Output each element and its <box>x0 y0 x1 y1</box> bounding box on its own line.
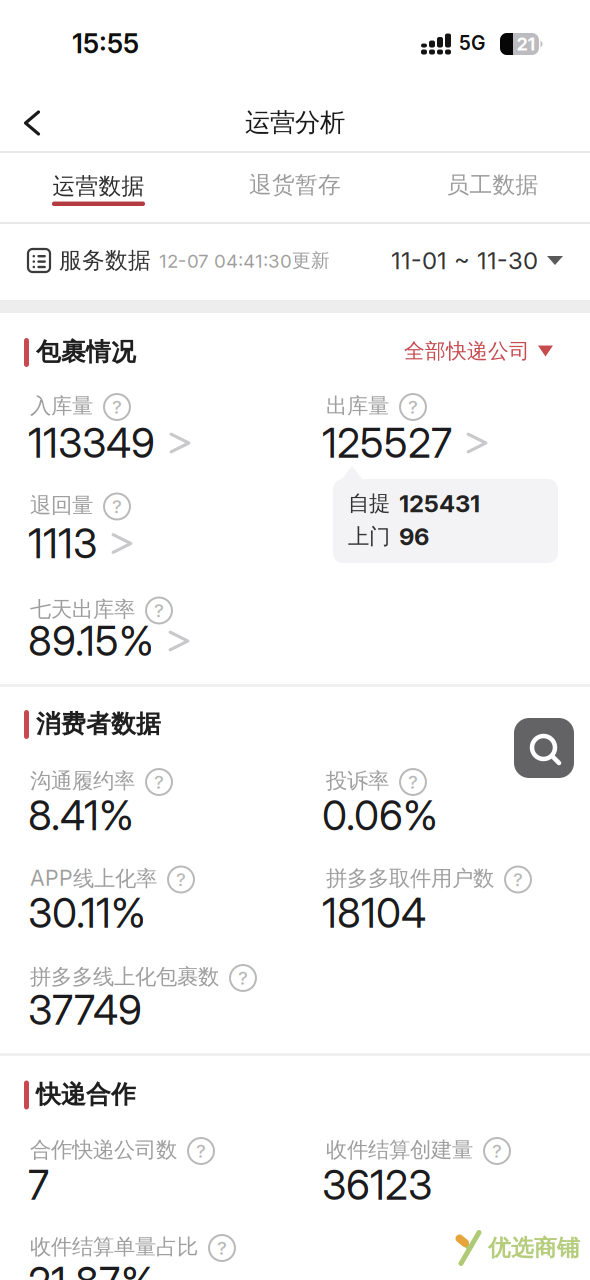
staticText: 5G <box>459 31 485 55</box>
staticText: 服务数据 <box>59 246 151 275</box>
staticText: 消费者数据 <box>36 708 161 740</box>
staticText: ? <box>408 771 418 793</box>
staticText: 出库量 <box>326 393 389 419</box>
staticText: 30.11% <box>28 888 146 938</box>
staticText: 15:55 <box>72 27 139 60</box>
staticText: 37749 <box>28 985 142 1035</box>
button[interactable]: 1113 <box>28 519 127 568</box>
staticText: ? <box>154 771 164 793</box>
staticText: ? <box>408 396 418 418</box>
staticText: 0.06% <box>322 791 438 840</box>
staticText: 合作快递公司数 <box>30 1137 177 1163</box>
staticText: 36123 <box>322 1160 432 1210</box>
staticText: 拼多多取件用户数 <box>326 865 494 892</box>
staticText: APP线上化率 <box>30 865 157 892</box>
staticText: 七天出库率 <box>30 596 135 623</box>
button[interactable]: 选择快递公司 <box>404 330 553 372</box>
staticText: 21 <box>516 33 535 55</box>
staticText: 上门 <box>348 523 390 550</box>
button[interactable]: 员工数据 <box>436 159 548 211</box>
staticText: ? <box>492 1140 502 1162</box>
staticText: 12-07 04:41:30更新 <box>159 249 330 272</box>
staticText: 收件结算单量占比 <box>30 1234 198 1260</box>
button[interactable]: 搜索 <box>514 718 574 778</box>
staticText: ? <box>513 868 523 891</box>
staticText: 125527 <box>322 418 452 468</box>
staticText: 18104 <box>322 888 426 938</box>
button[interactable]: 113349 <box>28 418 185 468</box>
staticText: 沟通履约率 <box>30 768 135 794</box>
staticText: 快递合作 <box>36 1079 136 1110</box>
staticText: 入库量 <box>30 393 93 419</box>
button[interactable]: 退货暂存 <box>239 159 351 211</box>
staticText: ? <box>154 599 164 622</box>
staticText: 自提 <box>348 490 390 517</box>
staticText: ? <box>176 868 186 891</box>
staticText: 全部快递公司 <box>404 338 530 364</box>
staticText: 投诉率 <box>326 768 389 794</box>
button[interactable]: 选择日期范围 <box>391 236 563 285</box>
staticText: 退货暂存 <box>249 171 341 199</box>
staticText: 7 <box>28 1160 49 1210</box>
staticText: 员工数据 <box>446 171 538 199</box>
staticText: 优选商铺 <box>488 1234 580 1262</box>
button[interactable]: 125527 <box>322 418 482 468</box>
staticText: 1113 <box>28 519 97 568</box>
staticText: 收件结算创建量 <box>326 1137 473 1163</box>
staticText: 21.87% <box>28 1257 156 1280</box>
staticText: ? <box>112 396 122 418</box>
staticText: 113349 <box>28 418 155 468</box>
button[interactable]: 运营数据 <box>42 164 155 214</box>
staticText: ? <box>112 495 122 518</box>
staticText: 96 <box>399 522 429 551</box>
staticText: 8.41% <box>28 791 134 840</box>
staticText: 运营数据 <box>52 172 144 201</box>
button[interactable]: 返回 <box>15 102 49 144</box>
staticText: 11-01 ~ 11-30 <box>391 246 538 275</box>
staticText: 包裹情况 <box>36 336 136 368</box>
staticText: 运营分析 <box>245 106 345 138</box>
staticText: ? <box>196 1140 206 1162</box>
staticText: 89.15% <box>28 616 154 666</box>
button[interactable]: 89.15% <box>28 616 184 666</box>
staticText: ? <box>238 967 248 989</box>
staticText: ? <box>217 1237 227 1259</box>
staticText: 拼多多线上化包裹数 <box>30 964 219 990</box>
staticText: 退回量 <box>30 492 93 519</box>
staticText: 125431 <box>399 489 480 518</box>
